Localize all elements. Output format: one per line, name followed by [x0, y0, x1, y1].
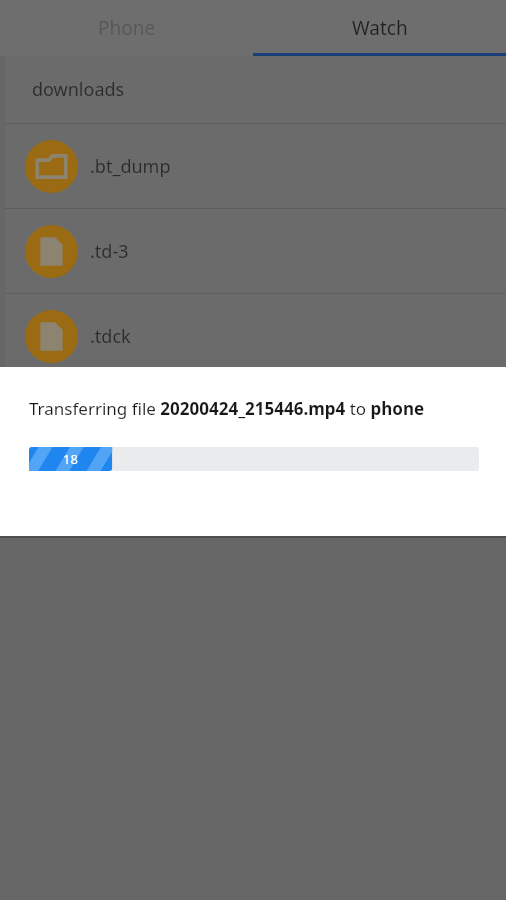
- staticText: 18: [63, 450, 78, 468]
- button[interactable]: downloads: [5, 56, 506, 123]
- other: File: [25, 225, 78, 278]
- other: File: [25, 395, 78, 448]
- staticText: downloads: [32, 77, 125, 102]
- staticText: .tdck: [90, 324, 131, 349]
- other: File: [25, 310, 78, 363]
- button[interactable]: File: [5, 294, 506, 378]
- button[interactable]: File: [5, 209, 506, 293]
- staticText: Watch: [352, 15, 408, 41]
- button[interactable]: File: [5, 379, 506, 463]
- button[interactable]: Watch: [253, 0, 506, 56]
- other: Folder: [25, 140, 78, 193]
- staticText: Phone: [98, 15, 156, 41]
- staticText: .bt_dump: [90, 154, 171, 179]
- staticText: Transferring file 20200424_215446.mp4 to…: [29, 397, 425, 420]
- staticText: .td-3: [90, 239, 129, 264]
- button[interactable]: Folder: [5, 124, 506, 208]
